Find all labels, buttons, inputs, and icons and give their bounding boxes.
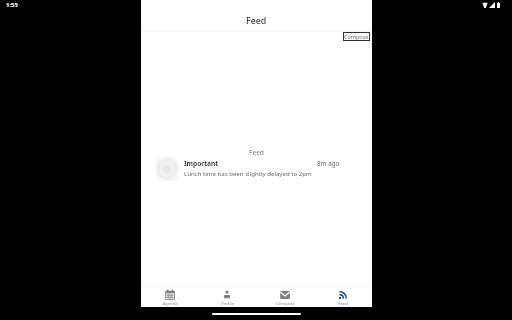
button[interactable]: Compose xyxy=(343,32,370,41)
button[interactable]: Profile xyxy=(198,287,256,307)
staticText: Feed xyxy=(249,148,264,157)
staticText: 1:55 xyxy=(6,1,18,9)
button[interactable]: Feed xyxy=(314,287,372,307)
staticText: Compose xyxy=(276,301,295,307)
staticText: Compose xyxy=(344,33,369,40)
staticText: 8m ago xyxy=(317,159,340,168)
staticText: Important xyxy=(184,159,219,168)
staticText: Lunch time has been slightly delayed to … xyxy=(184,169,312,177)
staticText: Profile xyxy=(221,301,234,307)
button[interactable]: Important xyxy=(141,155,372,185)
staticText: Feed xyxy=(246,15,267,27)
button[interactable]: Compose xyxy=(256,287,314,307)
staticText: Agenda xyxy=(162,301,178,307)
staticText: Feed xyxy=(338,301,348,307)
button[interactable]: Agenda xyxy=(141,287,198,307)
